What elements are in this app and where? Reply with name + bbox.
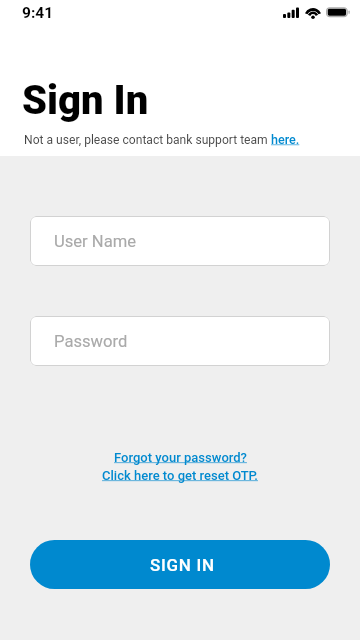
- staticText: Forgot your password?: [114, 450, 247, 465]
- button[interactable]: Forgot your password?: [114, 450, 247, 465]
- staticText: Sign In: [22, 77, 149, 124]
- button[interactable]: Password: [30, 316, 330, 366]
- button[interactable]: User Name: [30, 216, 330, 266]
- staticText: Not a user, please contact bank support …: [24, 133, 271, 147]
- other: Cellular signal: [283, 7, 299, 18]
- staticText: Click here to get reset OTP.: [102, 468, 258, 483]
- button[interactable]: SIGN IN: [30, 540, 330, 589]
- staticText: 9:41: [22, 4, 54, 22]
- staticText: Password: [54, 332, 128, 351]
- other: Battery: [325, 6, 351, 18]
- staticText: User Name: [54, 232, 137, 251]
- staticText: SIGN IN: [150, 555, 215, 575]
- other: Wi-Fi: [305, 6, 321, 18]
- button[interactable]: here.: [271, 132, 300, 147]
- button[interactable]: Click here to get reset OTP.: [102, 468, 258, 483]
